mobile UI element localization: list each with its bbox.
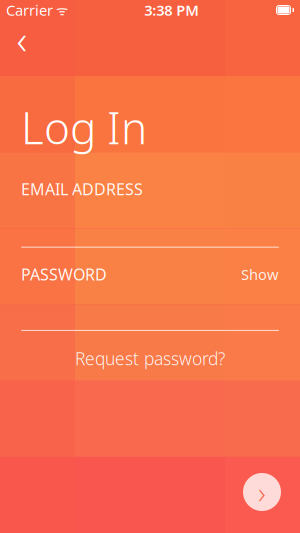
button[interactable]: Back (2, 22, 42, 56)
staticText: Request password? (75, 347, 225, 370)
staticText: Show (241, 265, 279, 284)
button[interactable]: Request password? (0, 343, 300, 374)
staticText: ᯤ (53, 1, 68, 19)
staticText: PASSWORD (21, 264, 107, 285)
staticText: 3:38 PM (144, 0, 199, 20)
staticText: Carrier (6, 0, 53, 20)
button[interactable]: Continue (243, 473, 281, 511)
staticText: Log In (21, 98, 147, 156)
button[interactable]: Show (241, 265, 279, 284)
staticText: ‹ (16, 12, 27, 65)
staticText: › (258, 472, 266, 511)
staticText: EMAIL ADDRESS (21, 178, 143, 200)
